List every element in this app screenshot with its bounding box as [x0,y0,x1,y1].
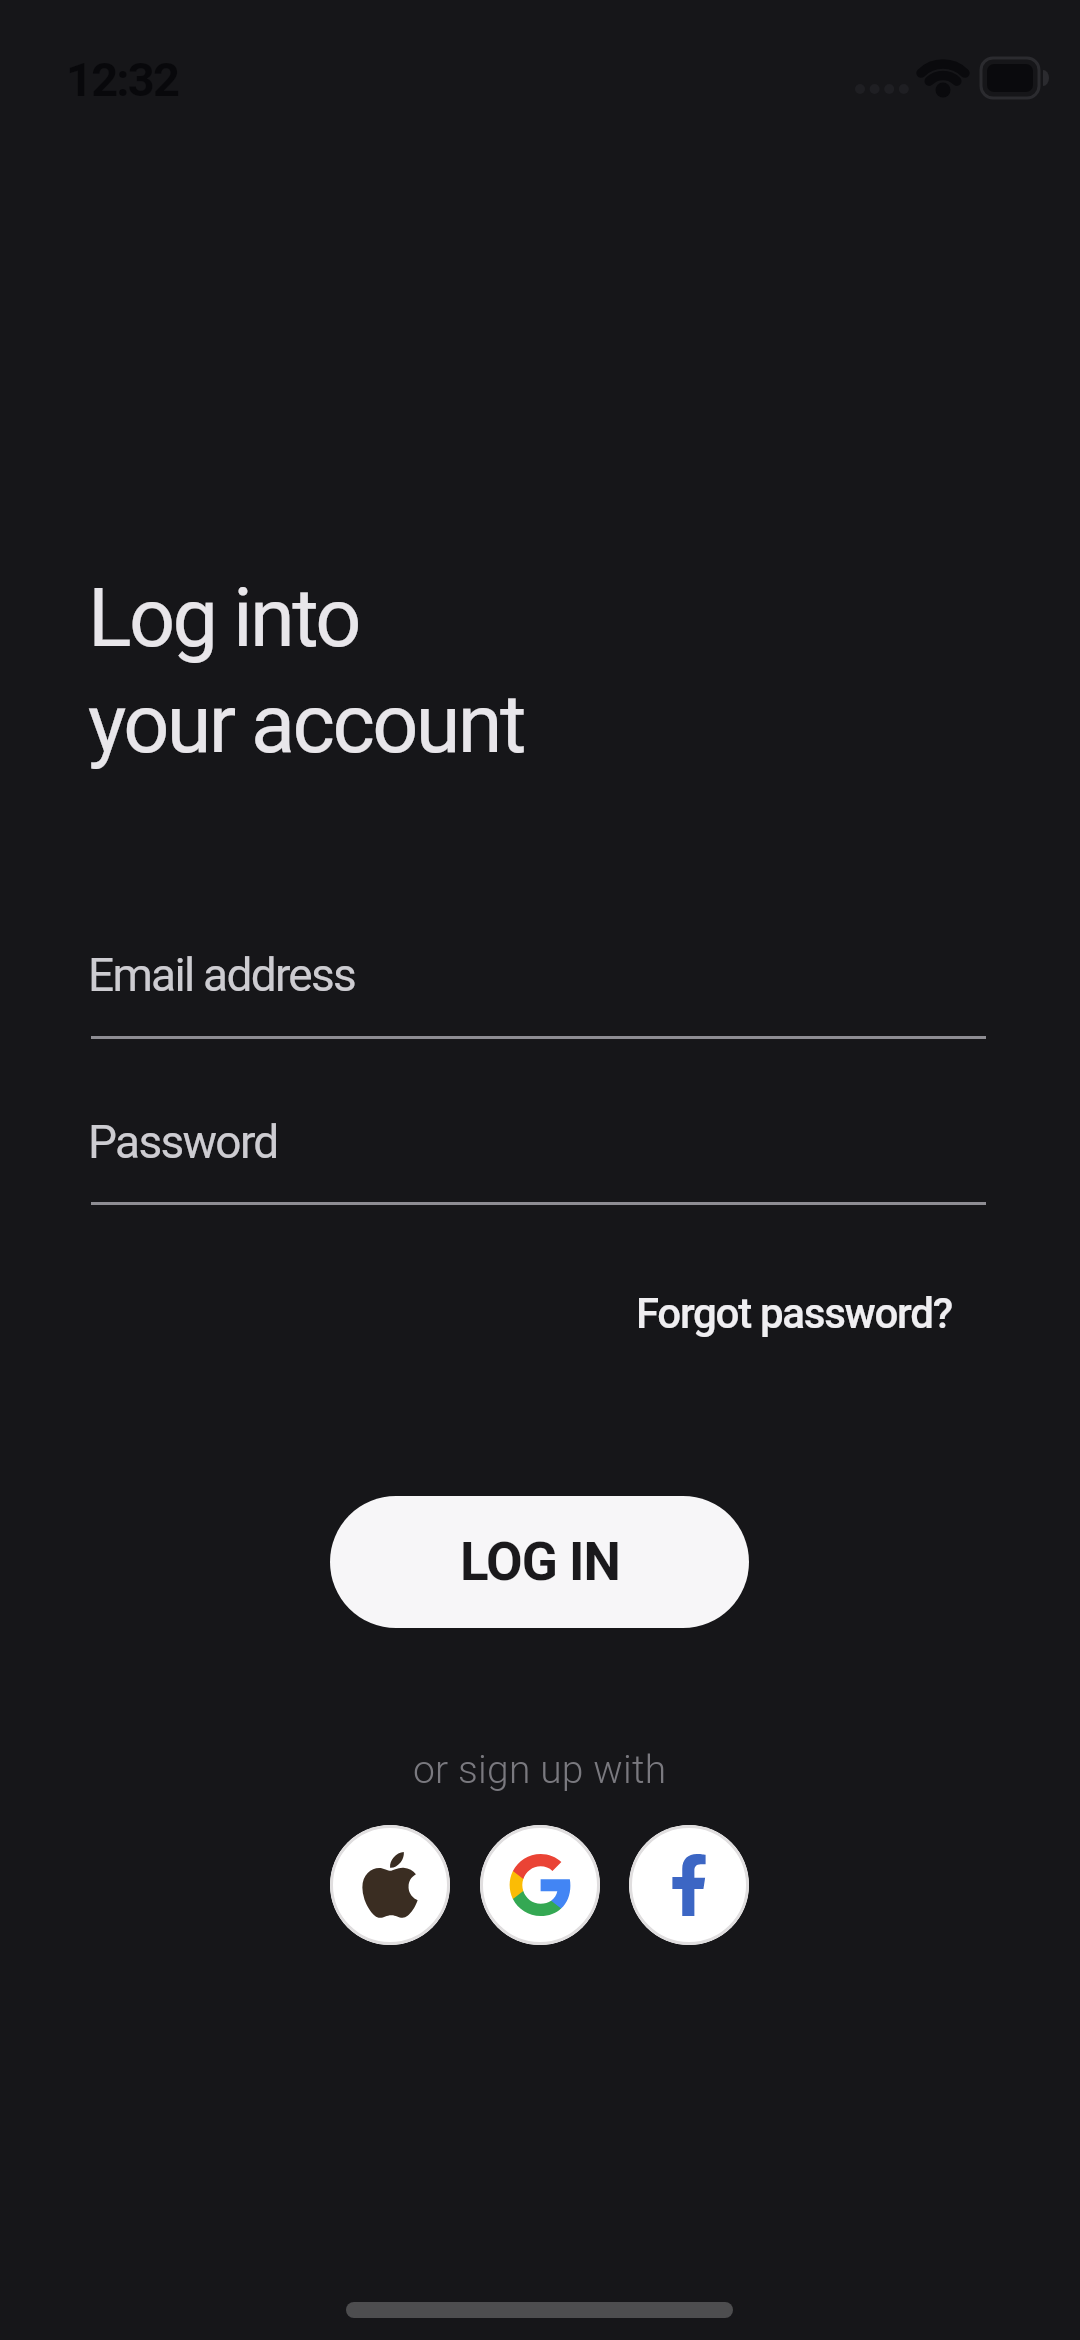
button[interactable]: Password [91,1097,986,1205]
staticText: 12:32 [66,52,179,107]
staticText: LOG IN [460,1531,620,1593]
button[interactable]: Email address [91,930,986,1039]
button[interactable] [480,1825,600,1945]
button[interactable] [629,1825,749,1945]
staticText: or sign up with [413,1747,667,1793]
staticText: Log into your account [88,571,524,772]
staticText: Forgot password? [636,1289,952,1338]
button[interactable]: LOG IN [330,1496,749,1628]
staticText: Password [88,1115,278,1169]
button[interactable]: Forgot password? [636,1289,952,1338]
staticText: Email address [88,948,356,1002]
button[interactable] [330,1825,450,1945]
